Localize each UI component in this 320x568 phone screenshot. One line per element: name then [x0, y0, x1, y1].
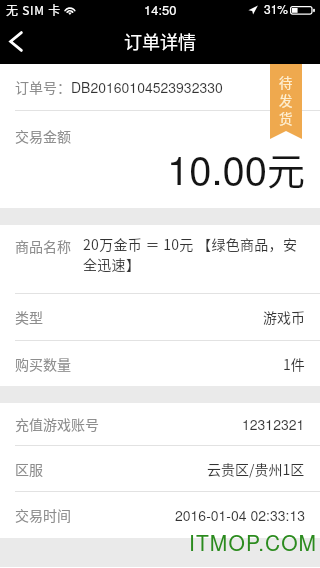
- staticText: 无 SIM 卡: [6, 1, 62, 18]
- staticText: 货: [279, 109, 293, 127]
- button[interactable]: 充值游戏账号: [0, 403, 320, 445]
- staticText: 1件: [283, 354, 305, 374]
- staticText: 订单详情: [124, 28, 196, 54]
- staticText: 2016-01-04 02:33:13: [175, 505, 305, 525]
- button[interactable]: Back: [0, 18, 31, 64]
- staticText: 交易时间: [15, 505, 71, 525]
- staticText: 订单号：: [15, 77, 71, 97]
- staticText: 类型: [15, 307, 43, 327]
- button[interactable]: 类型: [0, 294, 320, 340]
- staticText: 发: [279, 91, 293, 109]
- button[interactable]: 区服: [0, 446, 320, 491]
- staticText: 20万金币 ＝ 10元 【绿色商品，安全迅速】: [83, 234, 302, 274]
- staticText: ITMOP.COM: [189, 527, 318, 557]
- staticText: 购买数量: [15, 354, 71, 374]
- staticText: 区服: [15, 459, 43, 479]
- staticText: 交易金额: [15, 126, 71, 146]
- staticText: 游戏币: [263, 307, 305, 327]
- staticText: 10.00元: [167, 139, 306, 196]
- button[interactable]: 购买数量: [0, 341, 320, 386]
- button[interactable]: 商品名称: [0, 225, 320, 293]
- staticText: 31%: [264, 0, 289, 17]
- staticText: 12312321: [242, 414, 305, 434]
- staticText: 充值游戏账号: [15, 414, 99, 434]
- staticText: DB20160104523932330: [71, 77, 223, 97]
- staticText: 云贵区/贵州1区: [207, 459, 305, 479]
- button[interactable]: 交易时间: [0, 492, 320, 538]
- button[interactable]: 订单号：: [0, 64, 320, 110]
- staticText: 14:50: [144, 0, 177, 18]
- staticText: 待: [279, 73, 293, 91]
- staticText: 商品名称: [15, 236, 71, 256]
